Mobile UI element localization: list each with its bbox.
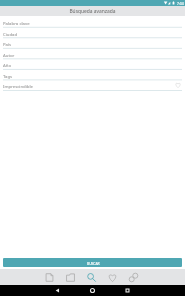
staticText: Ciudad [3,31,18,37]
button[interactable]: País [3,37,182,48]
button[interactable]: Palabra clave [3,16,182,27]
staticText: BUSCAR [87,261,100,265]
staticText: Año [3,62,12,68]
staticText: País [3,41,12,47]
button[interactable]: Search [86,272,96,282]
button[interactable]: Documents [44,272,54,282]
staticText: Tags [3,73,13,79]
staticText: Búsqueda avanzada [69,8,116,15]
button[interactable]: Imprescindible [3,79,182,90]
button[interactable]: Favourites [107,272,117,282]
staticText: Imprescindible [3,83,34,89]
button[interactable]: Ciudad [3,27,182,38]
button[interactable]: Links [128,272,138,282]
button[interactable]: Año [3,58,182,69]
button[interactable]: Autor [3,48,182,59]
other: Back [54,287,61,294]
button[interactable]: Folders [65,272,75,282]
other: Imprescindible [175,82,181,88]
button[interactable]: BUSCAR [3,258,182,267]
staticText: Palabra clave [3,20,30,26]
other: Home [89,287,96,294]
other: Recents [124,287,131,294]
staticText: Autor [3,52,15,58]
button[interactable]: Tags [3,69,182,80]
staticText: 7:04 [177,1,184,6]
